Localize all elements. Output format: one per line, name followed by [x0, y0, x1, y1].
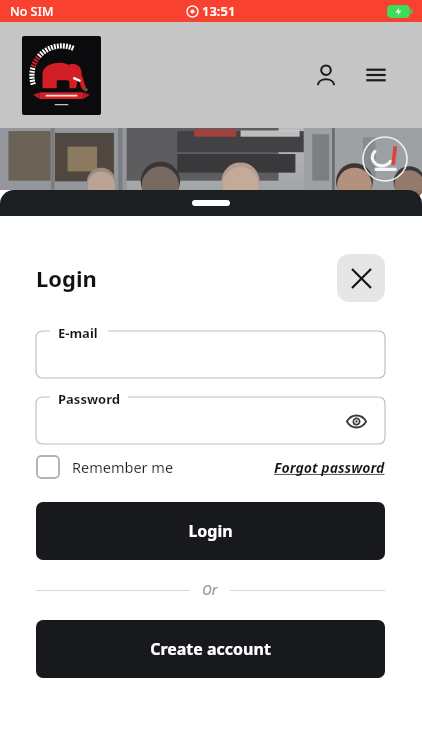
button[interactable]: The Red Elephant home [22, 36, 101, 115]
button[interactable] [36, 331, 385, 378]
staticText: Remember me [72, 457, 174, 477]
button[interactable]: Close [337, 254, 385, 302]
staticText: E-mail [58, 324, 98, 342]
button[interactable]: Forgot password [274, 458, 385, 477]
button[interactable]: Remember me [36, 455, 174, 479]
button[interactable]: Account [306, 55, 346, 95]
staticText: Forgot password [274, 458, 385, 477]
staticText: Password [58, 390, 120, 408]
button[interactable]: Menu [356, 55, 396, 95]
button[interactable]: Create account [36, 620, 385, 678]
button[interactable]: Login [36, 502, 385, 560]
staticText: 13:51 [202, 2, 236, 20]
staticText: No SIM [10, 3, 54, 20]
button[interactable]: Show password [339, 404, 373, 438]
button[interactable]: Show password [36, 397, 385, 444]
staticText: Login [36, 263, 97, 293]
staticText: Login [188, 520, 233, 542]
staticText: Create account [150, 638, 271, 660]
staticText: Or [202, 581, 218, 599]
